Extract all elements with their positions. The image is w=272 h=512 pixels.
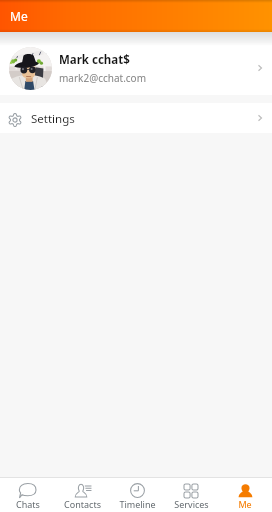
- staticText: Settings: [31, 111, 255, 127]
- button[interactable]: Chats: [0, 478, 55, 512]
- button[interactable]: Settings: [0, 103, 272, 133]
- staticText: Chats: [16, 498, 40, 510]
- staticText: Timeline: [119, 498, 156, 510]
- staticText: Mark cchat$: [59, 52, 130, 68]
- button[interactable]: Timeline: [110, 478, 164, 512]
- staticText: Me: [10, 8, 28, 24]
- staticText: Contacts: [64, 498, 101, 510]
- button[interactable]: Me: [218, 478, 272, 512]
- staticText: mark2@cchat.com: [59, 71, 147, 85]
- button[interactable]: Services: [164, 478, 218, 512]
- staticText: Me: [238, 498, 252, 510]
- button[interactable]: Mark cchat$: [0, 32, 272, 95]
- button[interactable]: Contacts: [55, 478, 110, 512]
- staticText: Services: [174, 498, 209, 510]
